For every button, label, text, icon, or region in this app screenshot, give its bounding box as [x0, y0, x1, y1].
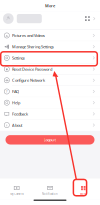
staticText: FAQ	[12, 89, 19, 94]
staticText: Reset Device Password	[12, 66, 52, 72]
button[interactable]: Pictures and Videos	[0, 30, 100, 41]
staticText: Feedback	[12, 111, 28, 116]
staticText: Settings	[12, 55, 25, 60]
button[interactable]	[0, 11, 100, 30]
button[interactable]: Settings	[0, 52, 100, 64]
staticText: ?	[6, 89, 8, 94]
staticText: Configure Network	[12, 78, 45, 83]
staticText: My Camera	[10, 192, 23, 196]
staticText: Help	[12, 100, 20, 105]
staticText: More	[45, 3, 55, 8]
button[interactable]: Help	[0, 97, 100, 108]
staticText: Manage Sharing Settings	[12, 44, 54, 49]
button[interactable]: My Camera	[0, 178, 33, 199]
button[interactable]: Logout	[5, 135, 94, 144]
button[interactable]: More	[67, 178, 100, 199]
button[interactable]: Feedback	[0, 108, 100, 120]
staticText: Pictures and Videos	[12, 33, 45, 38]
staticText: Logout	[43, 137, 56, 142]
button[interactable]: Reset Device Password	[0, 64, 100, 75]
button[interactable]: Notification	[33, 178, 67, 199]
button[interactable]: ?	[0, 86, 100, 97]
staticText: More	[80, 192, 87, 196]
staticText: About	[12, 122, 22, 128]
staticText: Notification	[42, 192, 58, 196]
button[interactable]: About	[0, 120, 100, 130]
button[interactable]: Configure Network	[0, 75, 100, 86]
button[interactable]: Manage Sharing Settings	[0, 41, 100, 52]
